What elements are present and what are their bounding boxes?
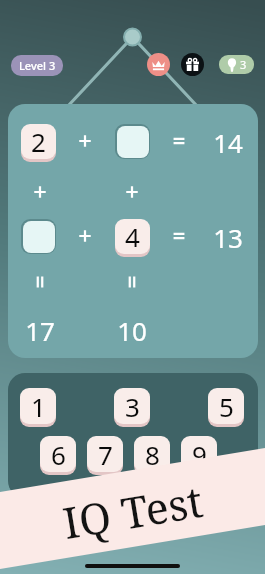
- staticText: 4: [125, 219, 140, 254]
- button[interactable]: 1: [20, 388, 56, 427]
- staticText: 9: [192, 437, 207, 472]
- staticText: Level 3: [19, 58, 56, 73]
- button[interactable]: 9: [181, 436, 217, 475]
- button[interactable]: 3: [114, 388, 150, 427]
- button[interactable]: [115, 124, 150, 162]
- staticText: 3: [240, 57, 247, 72]
- button[interactable]: 7: [87, 436, 123, 475]
- button[interactable]: 8: [134, 436, 170, 475]
- button[interactable]: 4: [115, 219, 150, 257]
- button[interactable]: Gift: [181, 53, 204, 76]
- button[interactable]: 5: [208, 388, 244, 427]
- staticText: 8: [145, 437, 160, 472]
- staticText: 17: [25, 313, 55, 341]
- button[interactable]: Level 3: [11, 55, 63, 76]
- staticText: 2: [31, 124, 46, 159]
- button[interactable]: [21, 219, 56, 257]
- staticText: 3: [125, 389, 140, 424]
- button[interactable]: 3: [219, 55, 254, 74]
- staticText: 13: [213, 220, 243, 248]
- staticText: 14: [213, 125, 243, 153]
- staticText: IQ Test: [58, 471, 207, 549]
- staticText: 5: [219, 389, 234, 424]
- staticText: 6: [51, 437, 66, 472]
- staticText: 10: [117, 313, 147, 341]
- button[interactable]: Premium: [147, 53, 170, 76]
- staticText: 7: [98, 437, 113, 472]
- button[interactable]: 2: [21, 124, 56, 162]
- button[interactable]: 6: [40, 436, 76, 475]
- staticText: 1: [31, 389, 46, 424]
